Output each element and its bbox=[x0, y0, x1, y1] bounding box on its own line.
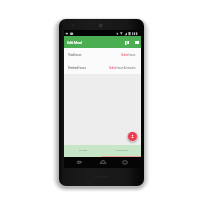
staticText: Select bbox=[121, 53, 128, 57]
staticText: CONTINUE bbox=[116, 149, 128, 152]
staticText: Select bbox=[109, 66, 116, 70]
button[interactable]: Finished hours bbox=[64, 61, 141, 74]
staticText: Total hours bbox=[68, 53, 82, 57]
staticText: hours bbox=[128, 53, 136, 57]
staticText: CANCEL bbox=[79, 149, 88, 152]
button[interactable]: Add person bbox=[128, 132, 137, 141]
staticText: Edit Meal bbox=[67, 40, 82, 45]
staticText: hours & minutes bbox=[116, 66, 136, 70]
button[interactable]: CONTINUE bbox=[102, 145, 141, 156]
button[interactable]: CANCEL bbox=[64, 145, 102, 156]
staticText: Finished hours bbox=[68, 66, 86, 70]
button[interactable]: Save bbox=[133, 38, 141, 47]
button[interactable]: Total hours bbox=[64, 48, 141, 61]
button[interactable]: Statistics bbox=[123, 38, 131, 47]
